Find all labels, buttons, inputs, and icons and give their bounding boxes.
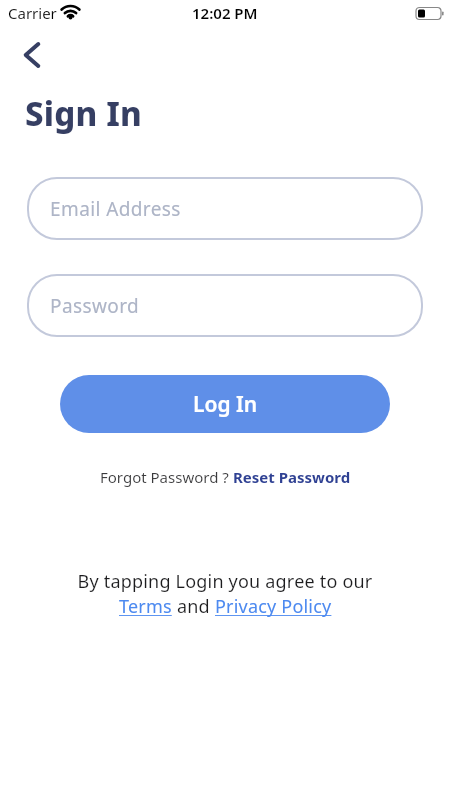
staticText: 12:02 PM bbox=[192, 3, 258, 23]
staticText: Forgot Password ? bbox=[100, 467, 233, 487]
button[interactable]: Reset Password bbox=[233, 467, 351, 487]
staticText: and bbox=[177, 594, 215, 619]
button[interactable]: Log In bbox=[60, 375, 390, 433]
staticText: Email Address bbox=[50, 196, 181, 222]
staticText: Log In bbox=[193, 390, 258, 419]
staticText: Password bbox=[50, 293, 140, 319]
button[interactable]: Terms bbox=[119, 594, 177, 619]
staticText: Carrier bbox=[8, 3, 57, 23]
button[interactable] bbox=[12, 35, 52, 75]
button[interactable]: Privacy Policy bbox=[215, 594, 332, 619]
staticText: Sign In bbox=[25, 91, 142, 136]
staticText: By tapping Login you agree to our bbox=[0, 569, 450, 594]
button[interactable]: Password bbox=[27, 274, 423, 337]
button[interactable]: Email Address bbox=[27, 177, 423, 240]
